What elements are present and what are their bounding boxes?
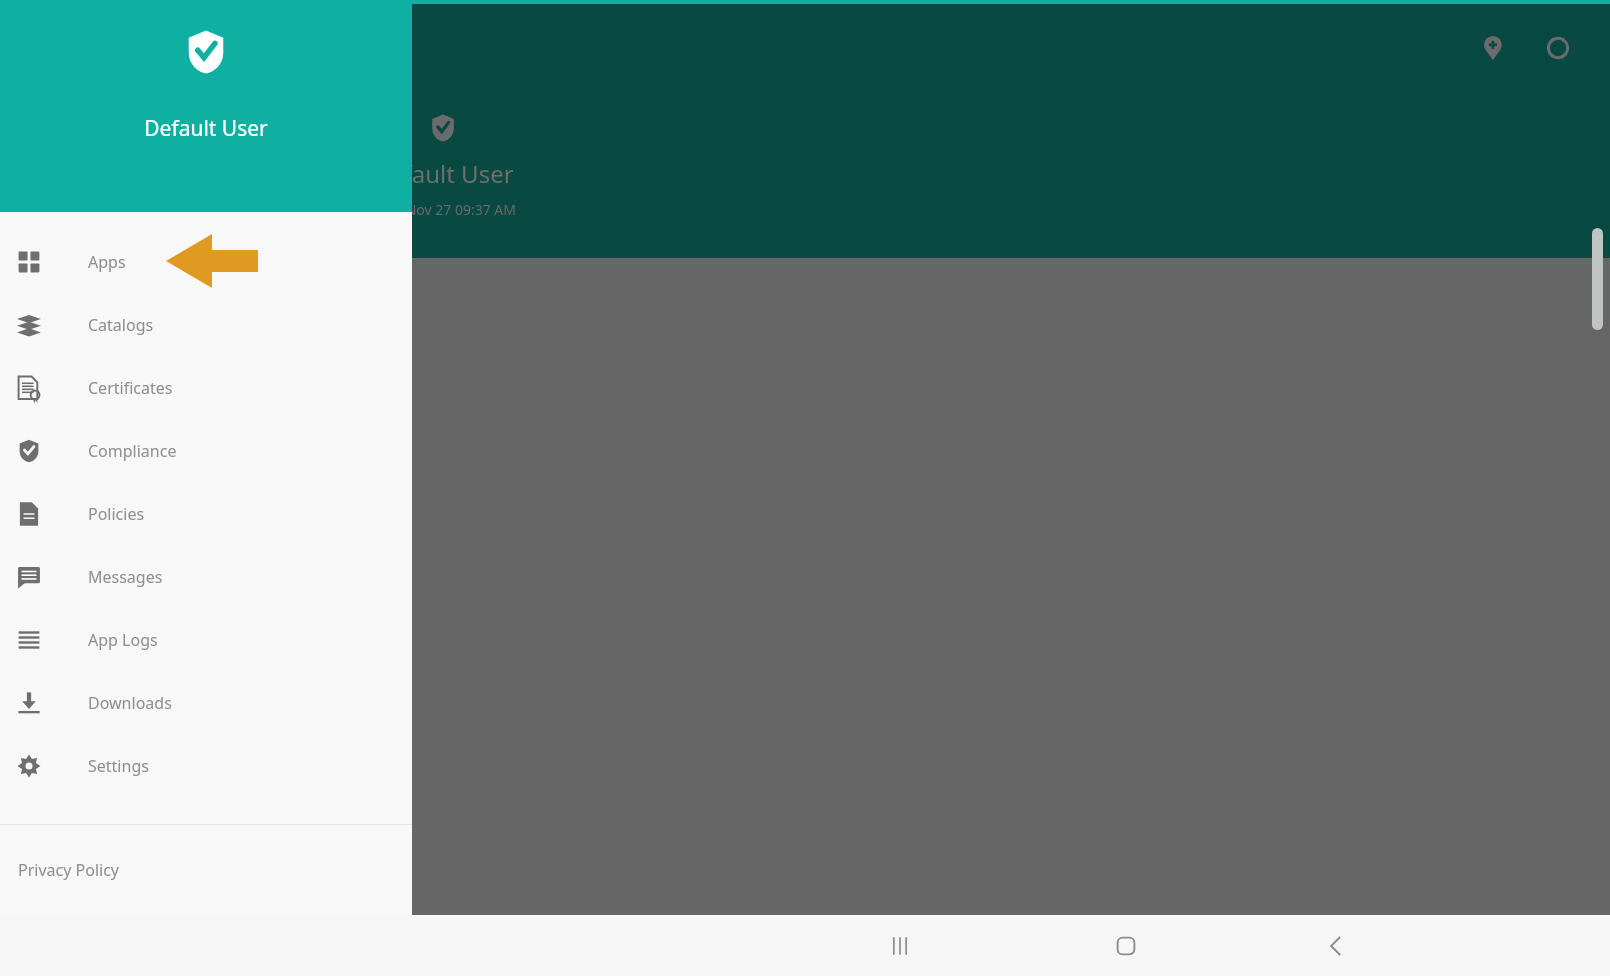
- button[interactable]: Messages: [0, 545, 412, 608]
- staticText: Settings: [88, 755, 149, 777]
- button[interactable]: Settings: [0, 734, 412, 797]
- staticText: Certificates: [88, 377, 173, 399]
- button[interactable]: Home: [1098, 918, 1154, 974]
- button[interactable]: Downloads: [0, 671, 412, 734]
- staticText: Catalogs: [88, 314, 154, 336]
- button[interactable]: Policies: [0, 482, 412, 545]
- button[interactable]: Apps: [0, 230, 412, 293]
- staticText: App Logs: [88, 629, 158, 651]
- staticText: Compliance: [88, 440, 177, 462]
- button[interactable]: Privacy Policy: [0, 825, 412, 915]
- staticText: Apps: [88, 251, 126, 273]
- button[interactable]: Compliance: [0, 419, 412, 482]
- button[interactable]: App Logs: [0, 608, 412, 671]
- staticText: Downloads: [88, 692, 172, 714]
- button[interactable]: Add location: [1476, 28, 1516, 68]
- button[interactable]: Recent apps: [872, 918, 928, 974]
- staticText: Wed, Nov 27 09:37 AM: [369, 200, 516, 219]
- button[interactable]: Certificates: [0, 356, 412, 419]
- staticText: Default User: [372, 157, 514, 190]
- button[interactable]: Sync: [1538, 28, 1578, 68]
- button[interactable]: Catalogs: [0, 293, 412, 356]
- staticText: Policies: [88, 503, 145, 525]
- staticText: Privacy Policy: [18, 859, 119, 881]
- staticText: Messages: [88, 566, 163, 588]
- staticText: Default User: [144, 114, 268, 143]
- button[interactable]: Back: [1308, 918, 1364, 974]
